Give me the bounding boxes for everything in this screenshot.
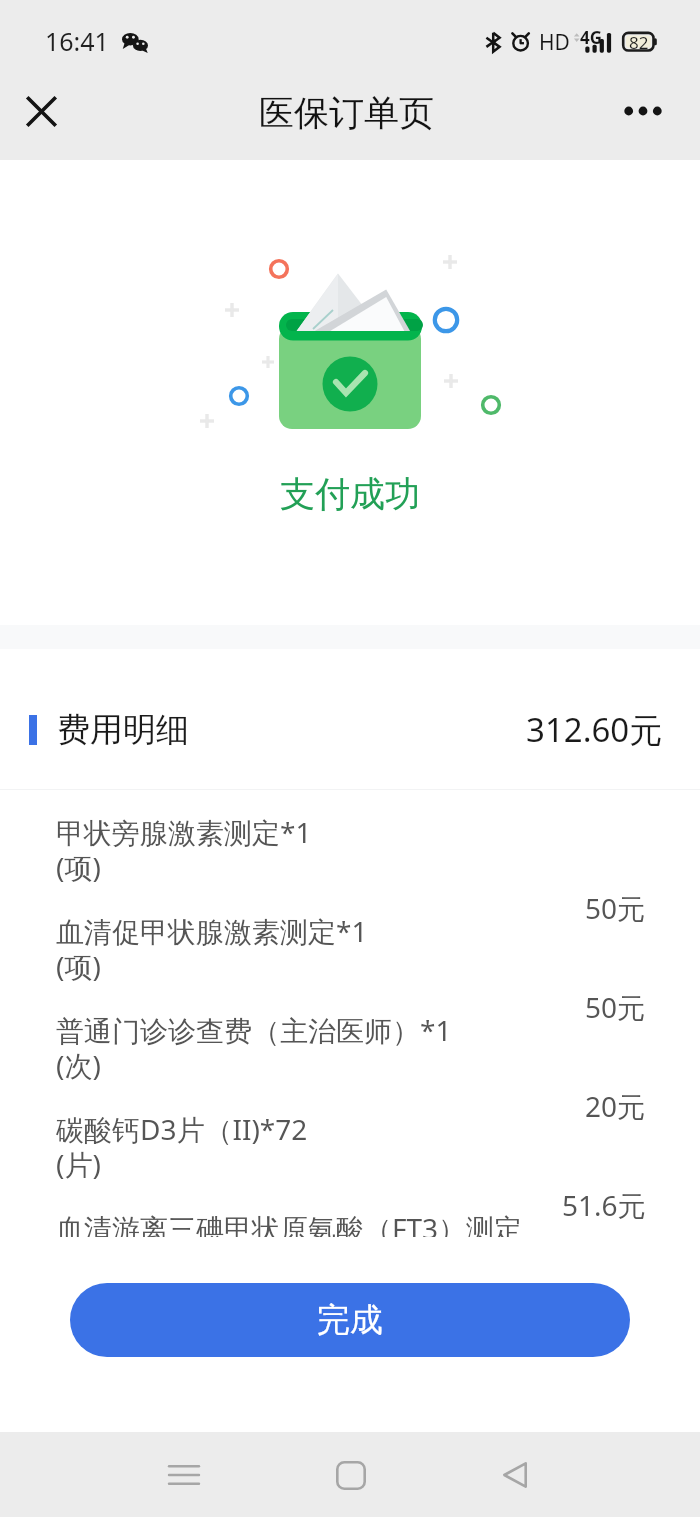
button[interactable]: More options bbox=[611, 83, 675, 139]
button[interactable]: 血清游离三碘甲状原氨酸（FT3）测定*1 bbox=[0, 1209, 700, 1237]
button[interactable]: 碳酸钙D3片（II)*72 bbox=[0, 1110, 700, 1224]
button[interactable]: 普通门诊诊查费（主治医师）*1 bbox=[0, 1011, 700, 1125]
staticText: (片) bbox=[56, 1145, 101, 1183]
staticText: 血清游离三碘甲状原氨酸（FT3）测定*1 bbox=[56, 1209, 530, 1237]
staticText: (次) bbox=[56, 1046, 101, 1084]
staticText: 82 bbox=[629, 31, 649, 54]
button[interactable]: Back bbox=[475, 1435, 555, 1515]
staticText: HD bbox=[539, 28, 570, 57]
staticText: 4G bbox=[580, 26, 603, 49]
staticText: 支付成功 bbox=[280, 472, 420, 516]
staticText: 16:41 bbox=[45, 24, 109, 58]
button[interactable]: 血清促甲状腺激素测定*1 bbox=[0, 912, 700, 1026]
staticText: (项) bbox=[56, 848, 101, 886]
staticText: 312.60元 bbox=[526, 707, 663, 752]
button[interactable]: 甲状旁腺激素测定*1 bbox=[0, 813, 700, 927]
staticText: 50元 bbox=[585, 988, 646, 1026]
staticText: 医保订单页 bbox=[259, 91, 434, 135]
staticText: 完成 bbox=[317, 1299, 383, 1341]
staticText: 20元 bbox=[585, 1087, 646, 1125]
button[interactable]: Close bbox=[13, 83, 69, 139]
staticText: 51.6元 bbox=[562, 1186, 646, 1224]
button[interactable]: Home bbox=[311, 1435, 391, 1515]
staticText: 血清促甲状腺激素测定*1 bbox=[56, 912, 368, 950]
staticText: 甲状旁腺激素测定*1 bbox=[56, 813, 312, 851]
staticText: 费用明细 bbox=[57, 709, 189, 751]
staticText: 碳酸钙D3片（II)*72 bbox=[56, 1110, 308, 1148]
staticText: 普通门诊诊查费（主治医师）*1 bbox=[56, 1011, 452, 1049]
staticText: 50元 bbox=[585, 889, 646, 927]
button[interactable]: 完成 bbox=[70, 1283, 630, 1357]
button[interactable]: Recent apps bbox=[144, 1435, 224, 1515]
staticText: (项) bbox=[56, 947, 101, 985]
